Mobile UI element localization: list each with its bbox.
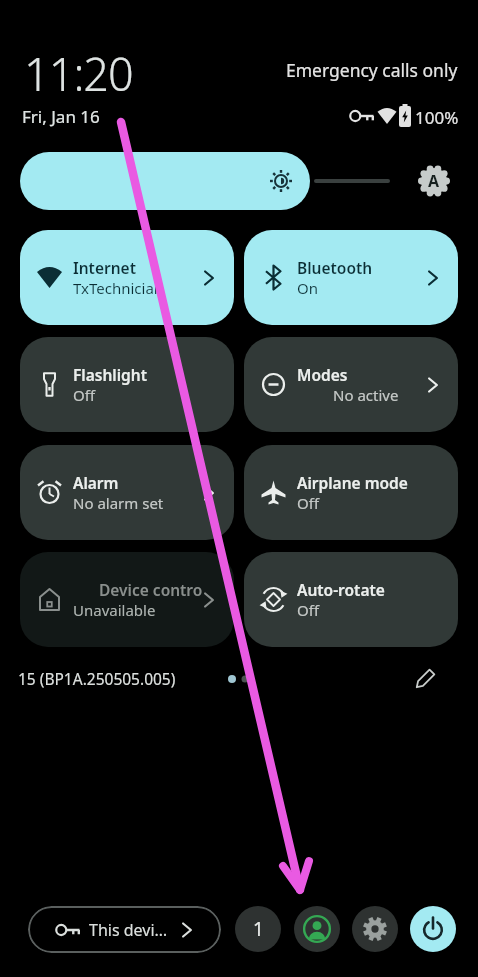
staticText: On <box>297 278 318 298</box>
button[interactable]: 1 <box>235 906 281 952</box>
button[interactable]: Auto-rotate <box>244 552 458 647</box>
button[interactable]: Airplane mode <box>244 445 458 540</box>
button[interactable] <box>412 664 440 692</box>
staticText: Device controls <box>99 579 202 600</box>
button[interactable]: A <box>417 164 451 198</box>
staticText: Off <box>297 600 320 620</box>
staticText: Bluetooth <box>297 257 373 278</box>
staticText: Off <box>297 493 320 513</box>
staticText: Emergency calls only <box>286 58 458 82</box>
button[interactable]: Modes <box>244 337 458 432</box>
staticText: 15 (BP1A.250505.005) <box>18 668 176 689</box>
staticText: Off <box>73 385 96 405</box>
button[interactable]: This devi… <box>28 906 221 953</box>
staticText: Flashlight <box>73 364 147 385</box>
button[interactable] <box>20 152 388 210</box>
staticText: 11:20 <box>24 43 133 104</box>
button[interactable]: Flashlight <box>20 337 234 432</box>
button[interactable]: Internet <box>20 230 234 325</box>
staticText: No active <box>333 385 399 405</box>
button[interactable] <box>294 906 340 952</box>
staticText: Internet <box>73 257 136 278</box>
button[interactable]: Alarm <box>20 445 234 540</box>
button[interactable]: Bluetooth <box>244 230 458 325</box>
staticText: A <box>428 170 440 192</box>
button[interactable]: Device controls <box>20 552 234 647</box>
button[interactable] <box>352 906 398 952</box>
staticText: Auto-rotate <box>297 579 385 600</box>
staticText: 100% <box>415 106 459 129</box>
staticText: Modes <box>297 364 348 385</box>
staticText: This devi… <box>89 919 168 941</box>
staticText: No alarm set <box>73 493 164 513</box>
button[interactable] <box>410 906 456 952</box>
staticText: 1 <box>253 916 264 942</box>
staticText: Fri, Jan 16 <box>22 105 100 128</box>
staticText: Airplane mode <box>297 472 408 493</box>
staticText: TxTechnician <box>73 278 164 298</box>
staticText: Alarm <box>73 472 119 493</box>
staticText: Unavailable <box>73 600 156 620</box>
